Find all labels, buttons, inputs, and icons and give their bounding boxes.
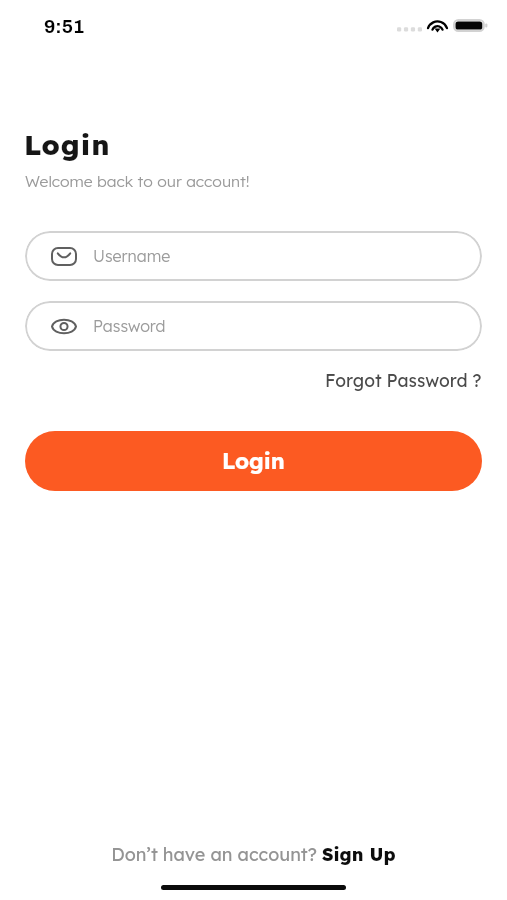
other: Wi-Fi bbox=[427, 18, 448, 32]
staticText: Password bbox=[93, 316, 166, 336]
button[interactable]: Login bbox=[25, 431, 482, 491]
button[interactable]: Don’t have an account? Sign Up bbox=[107, 839, 400, 870]
staticText: Forgot Password ? bbox=[325, 369, 482, 391]
other: Show password bbox=[51, 317, 77, 336]
button[interactable]: Show password bbox=[25, 301, 482, 351]
button[interactable]: Email bbox=[25, 231, 482, 281]
other: Email bbox=[51, 247, 77, 266]
staticText: Username bbox=[93, 246, 171, 266]
other: Battery bbox=[453, 19, 488, 32]
staticText: Don’t have an account? Sign Up bbox=[111, 843, 396, 866]
other: Cellular signal bbox=[397, 19, 422, 32]
staticText: Welcome back to our account! bbox=[25, 171, 250, 191]
staticText: 9:51 bbox=[44, 16, 85, 37]
staticText: Login bbox=[222, 447, 285, 475]
button[interactable]: Forgot Password ? bbox=[323, 367, 484, 393]
staticText: Login bbox=[24, 127, 111, 162]
